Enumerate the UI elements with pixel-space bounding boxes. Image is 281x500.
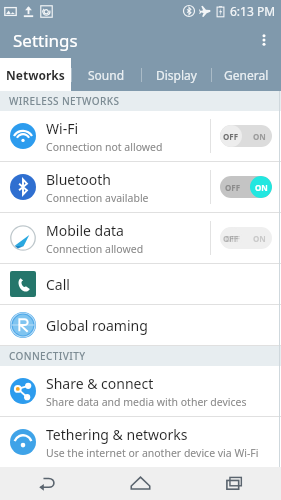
button[interactable]: Display [141, 58, 211, 91]
staticText: Use the internet or another device via W… [46, 446, 259, 460]
staticText: Display [156, 67, 197, 83]
staticText: OFF [223, 131, 239, 142]
button[interactable]: Networks [0, 58, 71, 91]
button[interactable]: Bluetooth toggle [211, 162, 281, 212]
staticText: OFF [225, 233, 241, 244]
button[interactable]: Tethering & networks [0, 417, 281, 467]
staticText: WIRELESS NETWORKS [9, 94, 120, 108]
button[interactable]: Recent apps [187, 467, 281, 500]
staticText: OFF [225, 131, 241, 142]
staticText: Connection not allowed [46, 140, 163, 154]
staticText: OFF [225, 182, 241, 193]
staticText: Share data and media with other devices [46, 395, 247, 409]
button[interactable]: Wi-Fi toggle [211, 111, 281, 161]
staticText: Settings [13, 29, 78, 52]
button[interactable]: Bluetooth [0, 162, 281, 212]
button[interactable]: Share & connect [0, 366, 281, 416]
button[interactable]: Wi-Fi [0, 111, 281, 161]
button[interactable]: General [211, 58, 281, 91]
staticText: Connection available [46, 191, 149, 205]
staticText: Wi-Fi [46, 119, 79, 138]
button[interactable]: Call [0, 264, 281, 304]
button[interactable]: Back [0, 467, 93, 500]
staticText: ON [253, 131, 266, 142]
staticText: General [224, 67, 269, 83]
button[interactable]: Mobile data [0, 213, 281, 263]
staticText: OFF [223, 233, 239, 244]
staticText: Networks [6, 67, 65, 83]
staticText: Global roaming [46, 316, 148, 335]
staticText: ON [255, 182, 268, 193]
button[interactable]: More options [247, 22, 281, 58]
staticText: CONNECTIVITY [9, 349, 86, 363]
button[interactable]: Global roaming [0, 305, 281, 345]
staticText: ON [253, 182, 266, 193]
button[interactable]: Mobile data toggle [211, 213, 281, 263]
button[interactable]: Sound [71, 58, 141, 91]
staticText: Mobile data [46, 221, 124, 240]
staticText: 6:13 PM [230, 3, 276, 19]
staticText: Tethering & networks [46, 425, 188, 444]
staticText: Bluetooth [46, 170, 111, 189]
staticText: Share & connect [46, 374, 154, 393]
staticText: Sound [88, 67, 125, 83]
staticText: Connection allowed [46, 242, 144, 256]
staticText: ON [253, 233, 266, 244]
button[interactable]: Home [93, 467, 187, 500]
staticText: Call [46, 275, 70, 294]
